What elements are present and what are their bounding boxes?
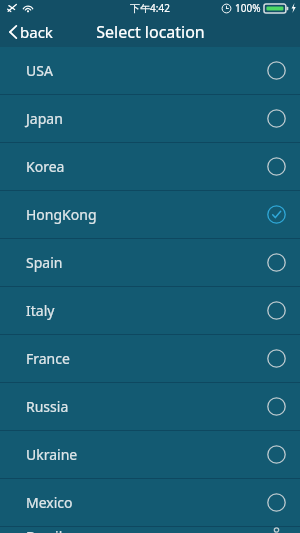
button[interactable]: Russia xyxy=(0,383,300,430)
staticText: France xyxy=(26,349,70,368)
staticText: 100% xyxy=(235,1,261,15)
button[interactable]: Mexico xyxy=(0,479,300,526)
staticText: Japan xyxy=(26,109,63,128)
staticText: Russia xyxy=(26,397,69,416)
staticText: Brazil xyxy=(26,527,63,533)
button[interactable]: USA xyxy=(0,47,300,94)
button[interactable]: Japan xyxy=(0,95,300,142)
staticText: Korea xyxy=(26,157,65,176)
button[interactable]: Korea xyxy=(0,143,300,190)
staticText: Ukraine xyxy=(26,445,78,464)
button[interactable]: Ukraine xyxy=(0,431,300,478)
button[interactable]: Spain xyxy=(0,239,300,286)
button[interactable]: France xyxy=(0,335,300,382)
staticText: Mexico xyxy=(26,493,73,512)
button[interactable]: Brazil xyxy=(0,527,300,533)
staticText: back xyxy=(20,22,53,42)
staticText: 下午4:42 xyxy=(130,1,170,15)
staticText: USA xyxy=(26,61,53,80)
button[interactable]: Italy xyxy=(0,287,300,334)
staticText: Spain xyxy=(26,253,63,272)
staticText: Select location xyxy=(96,21,205,43)
staticText: Italy xyxy=(26,301,55,320)
button[interactable]: back xyxy=(0,18,63,46)
staticText: HongKong xyxy=(26,205,97,224)
button[interactable]: HongKong xyxy=(0,191,300,238)
